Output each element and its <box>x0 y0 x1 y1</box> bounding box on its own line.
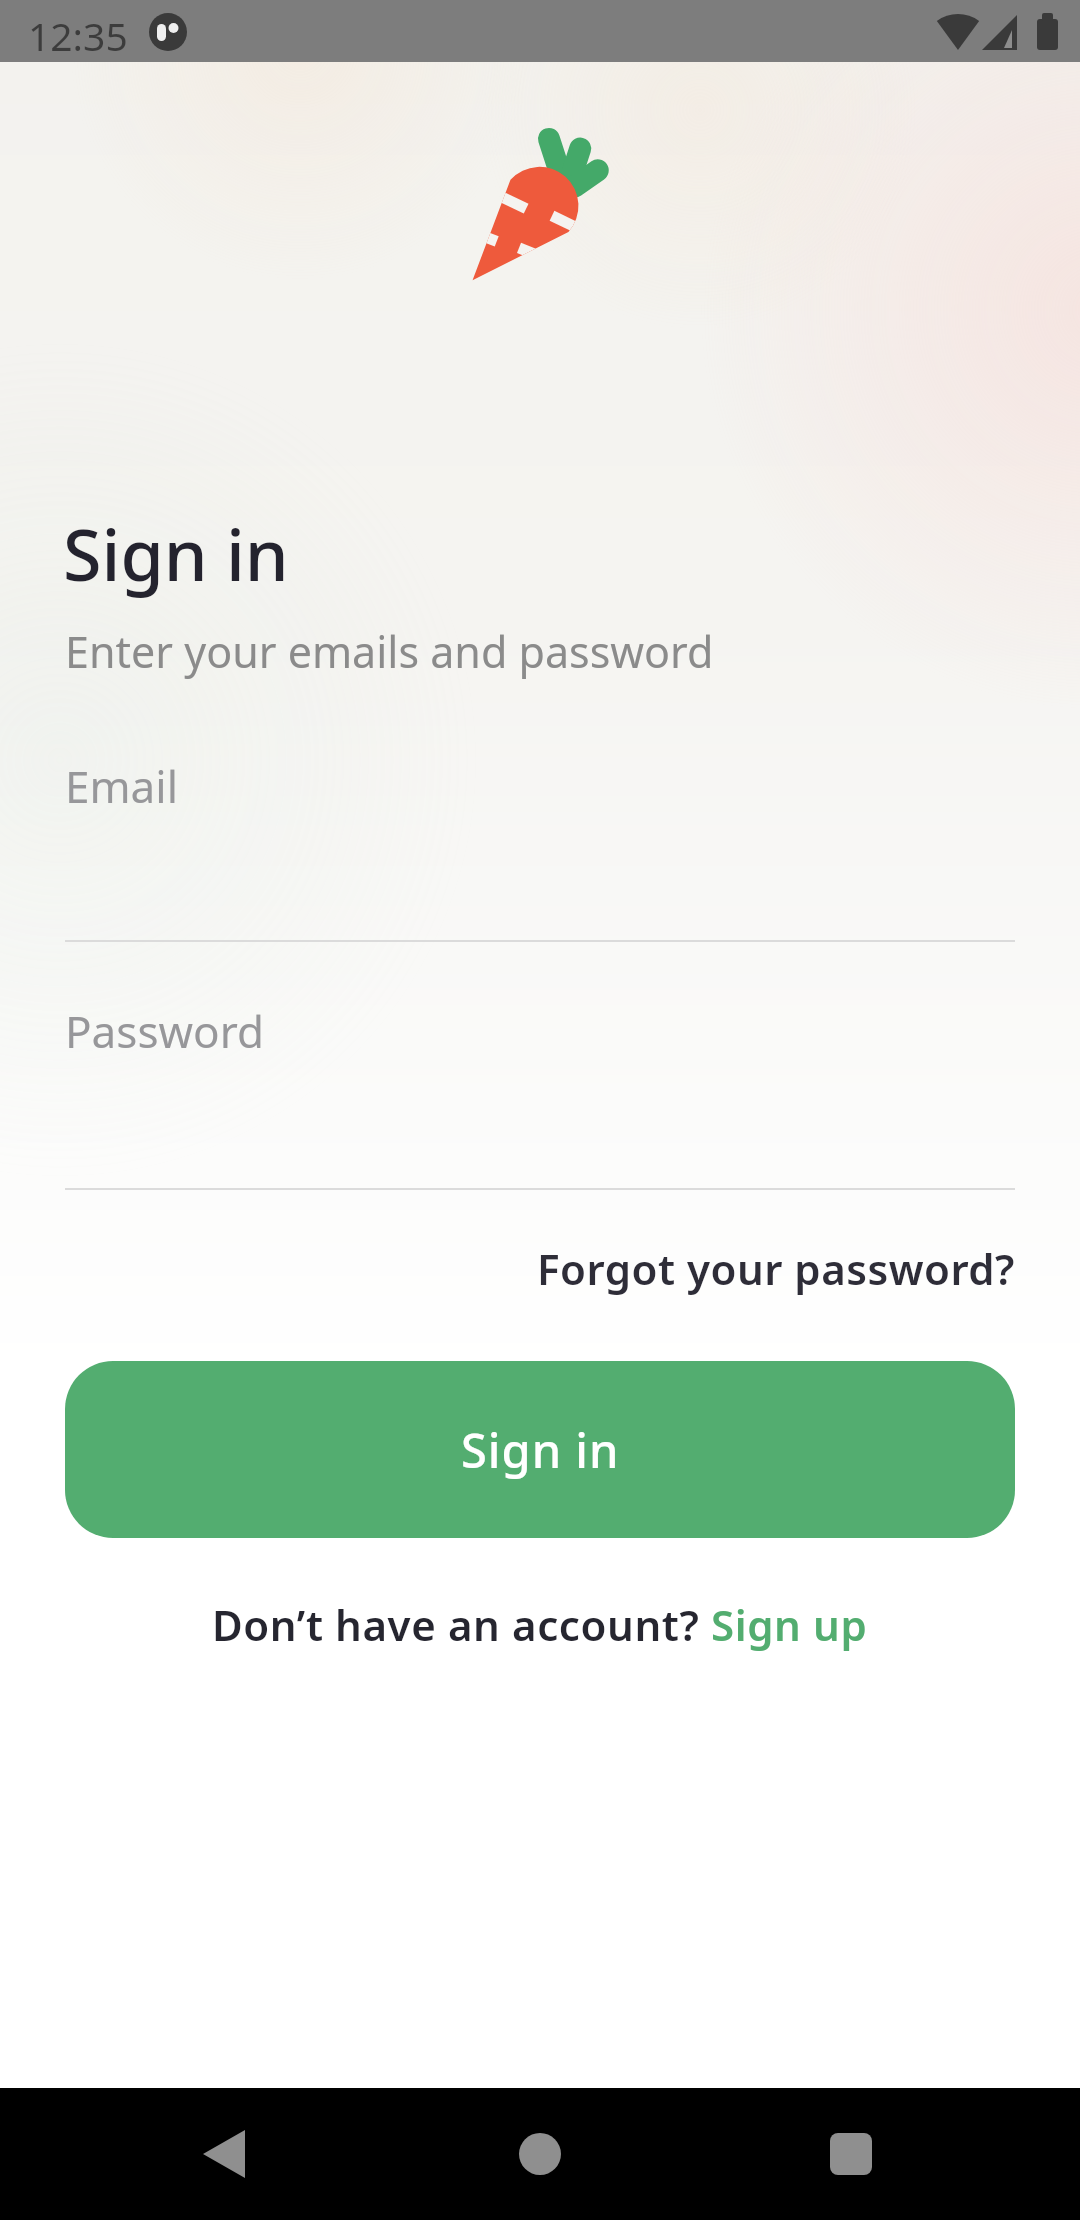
button[interactable]: Forgot your password? <box>537 1240 1015 1297</box>
button[interactable]: Sign in <box>65 1361 1015 1538</box>
staticText: Enter your emails and password <box>65 622 714 681</box>
staticText: Password <box>65 1001 265 1061</box>
button[interactable] <box>181 2130 277 2178</box>
staticText: Forgot your password? <box>537 1240 1015 1297</box>
staticText: 12:35 <box>28 9 128 62</box>
staticText: Don’t have an account? <box>212 1596 711 1653</box>
button[interactable]: Password <box>65 1001 1015 1190</box>
staticText: Email <box>65 756 178 816</box>
button[interactable] <box>803 2130 899 2178</box>
button[interactable] <box>492 2130 588 2178</box>
button[interactable]: Email <box>65 756 1015 942</box>
button[interactable]: Sign up <box>711 1596 868 1653</box>
staticText: Sign in <box>461 1418 620 1482</box>
staticText: Sign in <box>63 506 289 601</box>
staticText: Sign up <box>711 1596 868 1653</box>
